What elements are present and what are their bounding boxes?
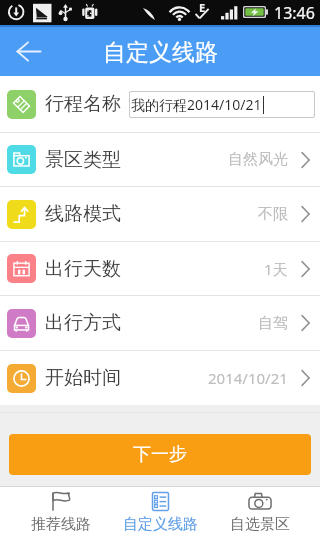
staticText: 出行天数	[45, 257, 121, 281]
staticText: 开始时间	[45, 366, 121, 390]
button[interactable]: 推荐线路	[11, 487, 111, 533]
staticText: 自定义线路	[123, 515, 198, 533]
staticText: 出行方式	[45, 311, 121, 335]
button[interactable]: 出行方式	[0, 296, 320, 350]
button[interactable]: 线路模式	[0, 187, 320, 241]
button[interactable]: Back	[0, 27, 58, 76]
staticText: 自定义线路	[103, 38, 218, 67]
staticText: 自驾	[258, 314, 288, 333]
staticText: 推荐线路	[31, 515, 91, 533]
staticText: 13:46	[274, 2, 315, 24]
button[interactable]: 景区类型	[0, 133, 320, 186]
button[interactable]: 出行天数	[0, 242, 320, 295]
staticText: 自选景区	[230, 515, 290, 533]
staticText: 景区类型	[45, 148, 121, 172]
staticText: 下一步	[133, 443, 187, 466]
staticText: 线路模式	[45, 202, 121, 226]
staticText: E	[199, 0, 206, 15]
staticText: 我的行程2014/10/21	[131, 95, 262, 114]
button[interactable]: 自定义线路	[111, 487, 210, 533]
staticText: 2014/10/21	[208, 368, 288, 388]
staticText: 不限	[258, 205, 288, 224]
button[interactable]: 行程名称	[0, 76, 320, 132]
button[interactable]: 自选景区	[210, 487, 309, 533]
staticText: 行程名称	[45, 92, 121, 116]
button[interactable]: 开始时间	[0, 351, 320, 405]
button[interactable]: 下一步	[9, 434, 311, 475]
staticText: 1天	[264, 259, 288, 279]
staticText: 自然风光	[228, 150, 288, 169]
